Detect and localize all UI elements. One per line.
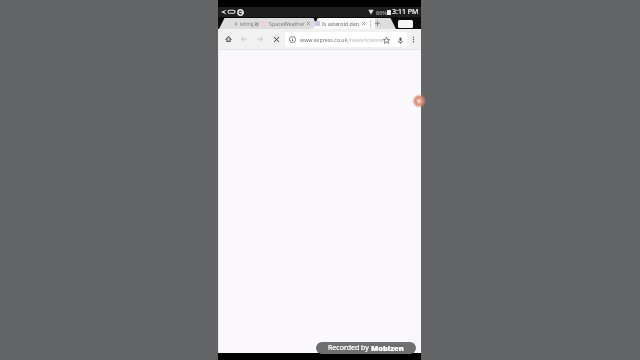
- staticText: SpaceWeather: [269, 20, 307, 27]
- button[interactable]: Stop loading: [268, 31, 284, 47]
- button[interactable]: More options: [405, 31, 421, 47]
- staticText: www.express.co.uk: [300, 36, 348, 43]
- button[interactable]: Tab: [398, 20, 413, 28]
- button[interactable]: New tab: [371, 17, 384, 29]
- staticText: /news/science: [348, 36, 384, 43]
- staticText: 3:11 PM: [392, 7, 419, 17]
- button[interactable]: Messenger chat head: [412, 94, 426, 108]
- staticText: letting up j: [240, 21, 259, 27]
- button[interactable]: Forward: [252, 31, 268, 47]
- button[interactable]: www.express.co.uk: [285, 32, 407, 47]
- button[interactable]: letting up j: [232, 18, 266, 29]
- staticText: 86%: [376, 9, 387, 16]
- staticText: Mobizen: [371, 343, 404, 353]
- button[interactable]: Back: [236, 31, 252, 47]
- button[interactable]: Home: [220, 31, 236, 47]
- staticText: Recorded by: [328, 343, 371, 353]
- button[interactable]: Voice search: [396, 36, 404, 44]
- staticText: Is asteroid dan: [322, 20, 362, 27]
- button[interactable]: Bookmark: [382, 36, 390, 44]
- button[interactable]: Is asteroid dan: [313, 18, 371, 29]
- button[interactable]: SpaceWeather: [260, 18, 315, 29]
